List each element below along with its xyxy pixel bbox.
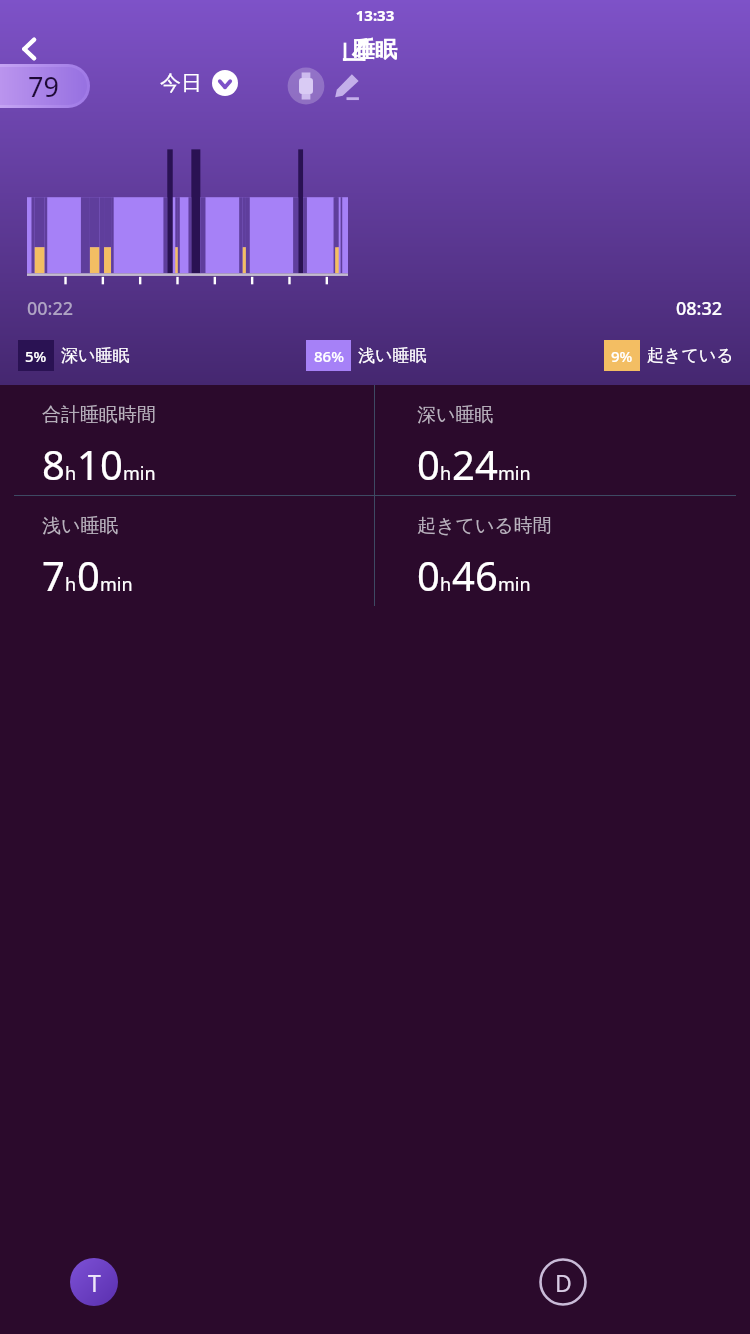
staticText: 深い睡眠 [61,345,130,366]
staticText: 今日 [160,70,202,96]
staticText: min [498,461,531,486]
staticText: 浅い睡眠 [358,345,427,366]
button[interactable]: 今日 [160,70,238,96]
button[interactable]: Share [331,26,377,72]
staticText: 13:33 [0,5,750,25]
button[interactable]: Device [281,61,331,111]
staticText: 0 [417,548,440,602]
staticText: 9% [611,346,633,366]
staticText: min [498,572,531,597]
staticText: h [440,572,452,597]
staticText: 起きている [647,345,734,366]
staticText: min [123,461,156,486]
staticText: 86% [314,346,344,366]
button[interactable]: Tips [70,1258,118,1306]
button[interactable]: 深い睡眠 [375,385,750,495]
button[interactable]: 9% [604,340,734,371]
button[interactable]: Back [6,25,54,73]
staticText: 0 [77,548,100,602]
button[interactable]: Details [539,1258,587,1306]
staticText: h [65,461,77,486]
staticText: 5% [25,346,47,366]
button[interactable]: 79 [0,64,90,108]
button[interactable]: 起きている時間 [375,496,750,606]
staticText: 08:32 [676,296,723,321]
staticText: 0 [417,437,440,491]
staticText: 00:22 [27,296,74,321]
button[interactable]: 合計睡眠時間 [0,385,374,495]
staticText: h [440,461,452,486]
staticText: h [65,572,77,597]
staticText: 24 [452,437,498,491]
staticText: 10 [77,437,123,491]
staticText: D [555,1267,572,1298]
button[interactable]: 5% [18,340,130,371]
staticText: 8 [42,437,65,491]
staticText: min [100,572,133,597]
staticText: 深い睡眠 [417,403,494,427]
button[interactable]: Edit [321,61,371,111]
staticText: 合計睡眠時間 [42,403,156,427]
staticText: 睡眠 [0,36,750,64]
staticText: 7 [42,548,65,602]
staticText: T [88,1267,101,1298]
staticText: 起きている時間 [417,514,552,538]
staticText: 79 [28,68,59,105]
button[interactable]: 浅い睡眠 [0,496,374,606]
staticText: 浅い睡眠 [42,514,119,538]
button[interactable]: 86% [306,340,427,371]
staticText: 46 [452,548,498,602]
